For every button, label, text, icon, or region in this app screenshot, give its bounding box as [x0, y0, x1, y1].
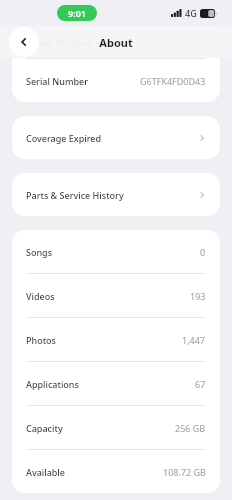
staticText: 67: [195, 378, 206, 390]
button[interactable]: Parts & Service History: [12, 173, 220, 216]
staticText: Available: [26, 466, 65, 478]
button[interactable]: Applications: [12, 362, 220, 405]
button[interactable]: Songs: [12, 230, 220, 273]
staticText: 4G: [185, 7, 197, 19]
staticText: 108.72 GB: [163, 466, 206, 478]
button[interactable]: Serial Number: [12, 59, 220, 102]
staticText: 256 GB: [175, 422, 206, 434]
button[interactable]: Coverage Expired: [12, 116, 220, 159]
staticText: 0: [200, 246, 206, 258]
staticText: G6TFK4FD0D43: [140, 75, 206, 87]
staticText: Videos: [26, 290, 55, 302]
staticText: Coverage Expired: [26, 132, 102, 144]
staticText: Serial Number: [26, 75, 88, 87]
staticText: Songs: [26, 246, 53, 258]
staticText: 9:01: [68, 7, 86, 19]
staticText: 1,447: [182, 334, 206, 346]
staticText: 193: [190, 290, 206, 302]
staticText: Capacity: [26, 422, 63, 434]
button[interactable]: Capacity: [12, 406, 220, 449]
staticText: Model Number: [26, 36, 91, 48]
staticText: Photos: [26, 334, 56, 346]
button[interactable]: Available: [12, 450, 220, 493]
staticText: Parts & Service History: [26, 189, 124, 201]
button[interactable]: Videos: [12, 274, 220, 317]
staticText: About: [0, 35, 232, 50]
staticText: Applications: [26, 378, 79, 390]
button[interactable]: Photos: [12, 318, 220, 361]
button[interactable]: Back: [9, 27, 39, 57]
